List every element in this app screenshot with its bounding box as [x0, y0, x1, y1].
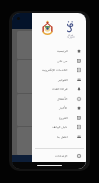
button[interactable]: الأعطال — [32, 94, 86, 104]
button[interactable]: من نحن — [32, 56, 86, 66]
button[interactable]: الأخبار — [32, 103, 86, 113]
staticText: شركة الكهرباء — [65, 33, 76, 39]
other: دليل الهاتف — [77, 125, 81, 129]
button[interactable]: الفروع — [32, 113, 86, 123]
button[interactable]: الإعدادات — [32, 151, 86, 161]
staticText: الإعدادات — [55, 154, 68, 158]
button[interactable]: دليل الهاتف — [32, 122, 86, 132]
staticText: الفروع — [59, 116, 68, 120]
other: الرئيسية — [77, 49, 81, 53]
staticText: الخدمات الإلكترونية — [42, 68, 68, 72]
button[interactable]: الرئيسية — [32, 46, 86, 56]
other: الأعطال — [77, 97, 81, 101]
button[interactable]: الفواتير — [32, 75, 86, 85]
button[interactable]: الخدمات الإلكترونية — [32, 65, 86, 75]
other: الأخبار — [77, 106, 81, 110]
other: الفروع — [77, 116, 81, 120]
other: الخدمات الإلكترونية — [77, 68, 81, 72]
button[interactable]: اتصل بنا — [32, 132, 86, 142]
staticText: اتصل بنا — [57, 135, 68, 139]
other: الإعدادات — [77, 154, 81, 158]
staticText: الأخبار — [59, 106, 68, 110]
staticText: قراءة العداد — [52, 87, 68, 91]
other: اتصل بنا — [77, 135, 81, 139]
other: قراءة العداد — [77, 87, 81, 91]
staticText: من نحن — [57, 59, 68, 63]
staticText: دليل الهاتف — [52, 125, 68, 129]
other: الفواتير — [77, 78, 81, 82]
button[interactable]: قراءة العداد — [32, 84, 86, 94]
other: من نحن — [77, 59, 81, 63]
staticText: الفواتير — [58, 78, 68, 82]
staticText: الأعطال — [57, 97, 68, 101]
staticText: الرئيسية — [57, 49, 68, 53]
